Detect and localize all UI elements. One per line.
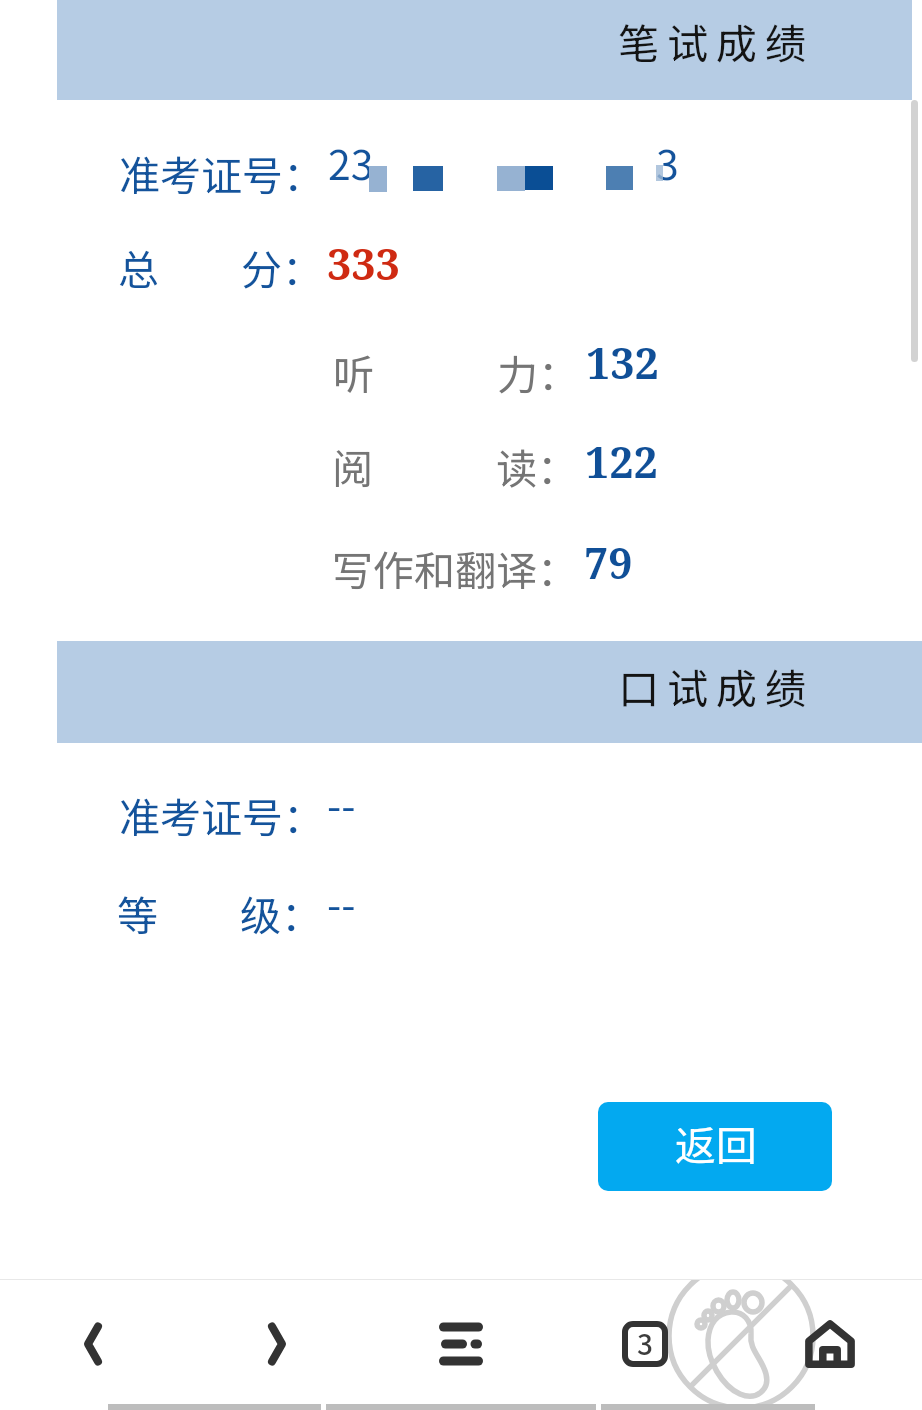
staticText: 阅 读： [332,436,578,495]
staticText: 听 力： [333,342,579,401]
staticText: 准考证号： [119,785,324,844]
staticText: 准考证号： [119,143,324,202]
button[interactable]: Menu [425,1308,497,1380]
staticText: 23 [328,132,374,191]
button[interactable]: Forward [241,1308,313,1380]
staticText: 333 [327,234,400,293]
staticText: 总 分： [118,237,323,296]
button[interactable]: 返回 [598,1102,832,1191]
staticText: 返回 [675,1113,757,1172]
staticText: -- [327,773,356,832]
staticText: 笔试成绩 [618,11,814,70]
staticText: 122 [585,432,658,491]
button[interactable]: Tabs, 3 open [609,1308,681,1380]
staticText: -- [327,872,356,931]
button[interactable]: Home [794,1308,866,1380]
staticText: 写作和翻译： [332,538,578,597]
button[interactable]: Back [57,1308,129,1380]
staticText: 3 [637,1323,653,1364]
staticText: 79 [584,533,633,592]
staticText: 口试成绩 [618,656,814,715]
staticText: 132 [586,333,659,392]
staticText: 3 [656,132,679,191]
staticText: 等 级： [117,883,322,942]
